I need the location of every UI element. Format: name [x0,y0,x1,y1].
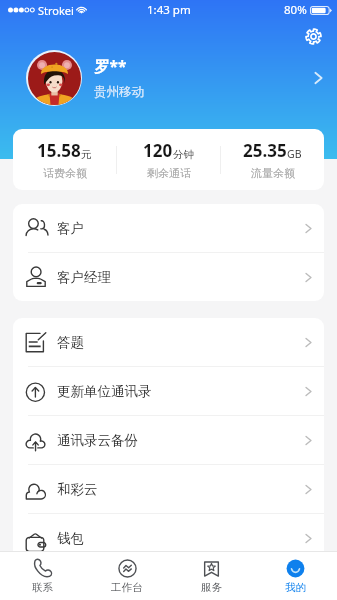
staticText: GB [287,147,302,161]
staticText: 和彩云 [57,481,98,498]
staticText: 分钟 [173,148,194,161]
button[interactable]: 和彩云 [13,465,324,513]
button[interactable]: 客户经理 [13,253,324,301]
button[interactable]: 罗** [0,50,337,106]
staticText: 工作台 [111,581,143,594]
staticText: 贵州移动 [94,84,144,100]
staticText: 1:43 pm [147,2,191,18]
button[interactable]: 25.35 [221,129,324,190]
staticText: 25.35 [243,139,287,162]
staticText: 80% [284,2,307,18]
button[interactable]: 通讯录云备份 [13,416,324,464]
staticText: 罗** [94,55,127,76]
button[interactable]: 联系 [0,552,85,600]
button[interactable]: 钱包 [13,514,324,562]
staticText: 服务 [201,581,222,594]
button[interactable]: 我的 [253,552,337,600]
staticText: 联系 [32,581,53,594]
staticText: 剩余通话 [147,166,191,180]
staticText: 我的 [285,581,306,594]
staticText: 120 [143,139,173,162]
staticText: 15.58 [37,139,81,162]
staticText: 元 [81,148,92,161]
button[interactable]: 客户 [13,204,324,252]
button[interactable]: 15.58 [13,129,116,190]
staticText: 答题 [57,334,84,351]
button[interactable]: 工作台 [85,552,169,600]
staticText: 客户经理 [57,269,111,286]
staticText: 话费余额 [43,166,87,180]
staticText: 通讯录云备份 [57,432,138,449]
staticText: 客户 [57,220,84,237]
staticText: 更新单位通讯录 [57,383,152,400]
staticText: 钱包 [57,530,84,547]
button[interactable]: Settings [302,25,325,48]
staticText: 流量余额 [251,166,295,180]
staticText: Strokei [38,3,74,18]
button[interactable]: 服务 [169,552,253,600]
button[interactable]: 更新单位通讯录 [13,367,324,415]
button[interactable]: 答题 [13,318,324,366]
button[interactable]: 120 [117,129,220,190]
